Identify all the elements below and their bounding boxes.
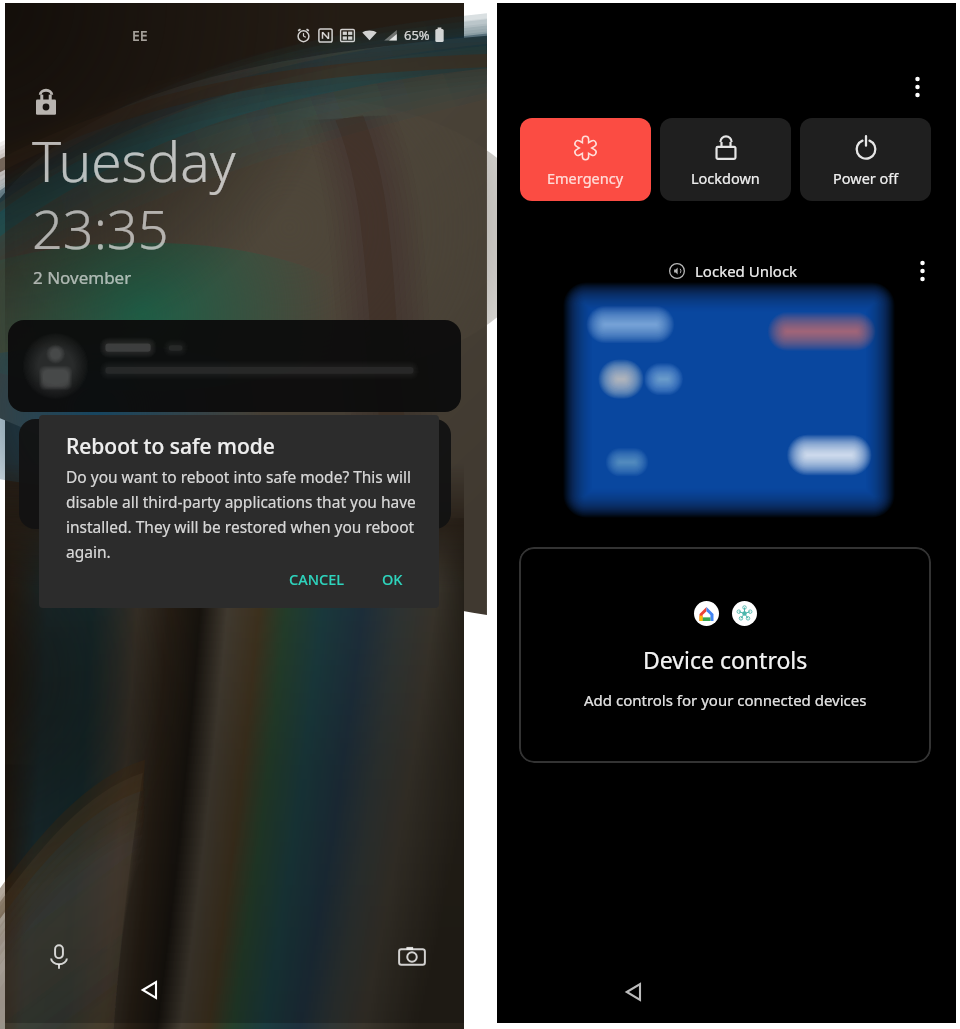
staticText: Locked Unlock	[695, 261, 798, 281]
button[interactable]: Power off	[800, 118, 931, 201]
button[interactable]: Back	[135, 975, 165, 1005]
button[interactable]: Emergency	[520, 118, 651, 201]
staticText: CANCEL	[289, 569, 344, 589]
button[interactable]: Camera	[398, 943, 426, 971]
staticText: Lockdown	[691, 168, 760, 188]
staticText: Tuesday	[32, 123, 236, 198]
staticText: Add controls for your connected devices	[584, 690, 867, 710]
staticText: Device controls	[643, 644, 808, 675]
staticText: 23:35	[32, 191, 169, 265]
staticText: EE	[132, 26, 148, 45]
button[interactable]: Media options	[908, 257, 936, 285]
button[interactable]: Device controls	[519, 547, 931, 763]
button[interactable]: Lockdown	[660, 118, 791, 201]
button[interactable]: Voice assist	[45, 943, 73, 971]
button[interactable]	[559, 284, 899, 516]
staticText: 65%	[404, 26, 430, 44]
staticText: Power off	[833, 168, 899, 188]
button[interactable]: Back	[619, 977, 649, 1007]
staticText: Do you want to reboot into safe mode? Th…	[66, 466, 418, 562]
button[interactable]: CANCEL	[281, 563, 352, 595]
staticText: OK	[382, 569, 403, 589]
staticText: Reboot to safe mode	[66, 432, 275, 461]
staticText: Emergency	[547, 168, 624, 188]
staticText: 2 November	[33, 266, 132, 289]
button[interactable]: More options	[901, 71, 933, 103]
button[interactable]	[8, 320, 461, 412]
button[interactable]: OK	[374, 563, 411, 595]
